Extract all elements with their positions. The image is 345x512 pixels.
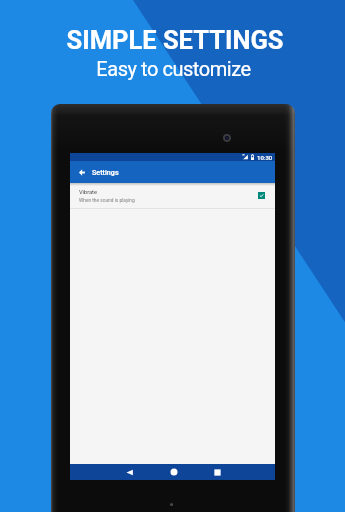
button[interactable]: Back — [115, 464, 144, 480]
staticText: Easy to customize — [96, 57, 251, 80]
staticText: SIMPLE SETTINGS — [66, 25, 284, 55]
staticText: Vibrate — [79, 189, 97, 196]
button[interactable]: Vibrate — [70, 183, 275, 208]
button[interactable]: Navigate up — [77, 167, 87, 177]
staticText: When the sound is playing — [79, 198, 135, 204]
staticText: Settings — [92, 168, 119, 176]
button[interactable]: Home — [159, 464, 188, 480]
staticText: 10:30 — [257, 154, 273, 161]
button[interactable]: Recent apps — [203, 464, 232, 480]
